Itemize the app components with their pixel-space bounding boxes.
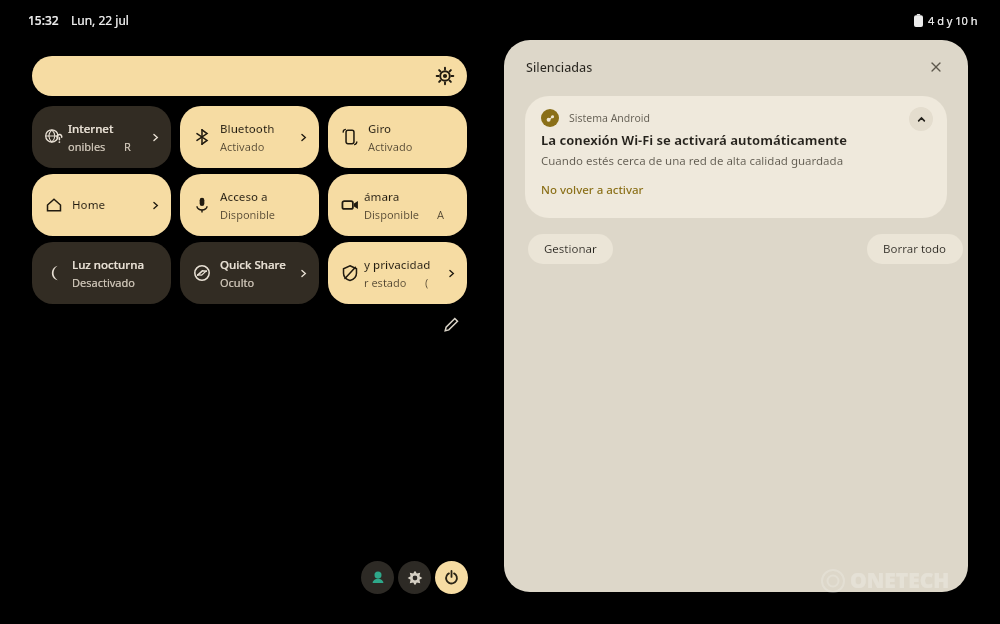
button[interactable]: Collapse bbox=[909, 107, 933, 131]
staticText: No volver a activar bbox=[541, 182, 644, 198]
staticText: Acceso a micro bbox=[220, 189, 297, 205]
button[interactable]: Quick Share bbox=[180, 242, 319, 304]
staticText: Internet bbox=[68, 121, 114, 137]
staticText: ámara bbox=[364, 189, 400, 205]
staticText: Quick Share bbox=[220, 257, 286, 273]
staticText: La conexión Wi-Fi se activará automática… bbox=[541, 131, 847, 149]
staticText: Disponible bbox=[220, 207, 275, 222]
button[interactable]: Internet bbox=[32, 106, 171, 168]
staticText: 15:32 bbox=[28, 12, 59, 28]
button[interactable]: Luz nocturna bbox=[32, 242, 171, 304]
staticText: Bluetooth bbox=[220, 121, 275, 137]
staticText: Oculto bbox=[220, 275, 255, 290]
button[interactable]: Sistema Android bbox=[525, 96, 947, 218]
staticText: Cuando estés cerca de una red de alta ca… bbox=[541, 153, 844, 169]
staticText: Gestionar bbox=[544, 241, 597, 257]
button[interactable]: y privacidad bbox=[328, 242, 467, 304]
other: Brightness bbox=[437, 68, 453, 84]
staticText: Silenciadas bbox=[526, 59, 593, 76]
staticText: ( bbox=[425, 275, 429, 290]
button[interactable]: Gestionar bbox=[528, 234, 613, 264]
staticText: Luz nocturna bbox=[72, 257, 144, 273]
button[interactable]: Borrar todo bbox=[867, 234, 963, 264]
staticText: Activado bbox=[220, 139, 265, 154]
button[interactable]: Power bbox=[435, 561, 468, 594]
button[interactable]: Bluetooth bbox=[180, 106, 319, 168]
button[interactable]: Giro automático bbox=[328, 106, 467, 168]
button[interactable]: Home bbox=[32, 174, 171, 236]
button[interactable]: Acceso a micro bbox=[180, 174, 319, 236]
button[interactable]: Close bbox=[924, 55, 948, 79]
staticText: 4 d y 10 h bbox=[928, 13, 978, 28]
button[interactable]: Brightness bbox=[32, 56, 467, 96]
staticText: r estado bbox=[364, 275, 407, 290]
staticText: Disponible bbox=[364, 207, 419, 222]
staticText: Activado bbox=[368, 139, 413, 154]
button[interactable]: User bbox=[361, 561, 394, 594]
staticText: Desactivado bbox=[72, 275, 135, 290]
staticText: ONETECH bbox=[850, 566, 950, 595]
staticText: Lun, 22 jul bbox=[71, 12, 129, 28]
button[interactable]: Settings bbox=[398, 561, 431, 594]
staticText: Acc bbox=[437, 207, 445, 222]
staticText: Home bbox=[72, 197, 106, 213]
staticText: R bbox=[124, 139, 131, 154]
staticText: y privacidad bbox=[364, 257, 431, 273]
button[interactable]: No volver a activar bbox=[539, 180, 646, 200]
staticText: Borrar todo bbox=[883, 241, 947, 257]
staticText: Sistema Android bbox=[569, 111, 650, 125]
staticText: Giro automático bbox=[368, 121, 445, 137]
staticText: onibles bbox=[68, 139, 106, 154]
button[interactable]: Edit tiles bbox=[437, 310, 465, 338]
button[interactable]: ámara bbox=[328, 174, 467, 236]
